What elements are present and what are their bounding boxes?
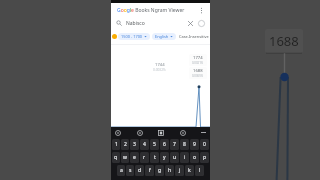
staticText: 1688 [269, 32, 299, 50]
button[interactable]: t [150, 152, 159, 163]
staticText: 6 [163, 141, 166, 148]
button[interactable]: GIF [135, 128, 144, 137]
staticText: 1774 [193, 55, 203, 61]
button[interactable]: 5 [150, 139, 159, 150]
staticText: Case-Insensitive [179, 34, 209, 39]
button[interactable]: More [199, 128, 208, 137]
button[interactable]: g [155, 165, 164, 176]
button[interactable]: r [140, 152, 149, 163]
button[interactable]: 0 [200, 139, 209, 150]
staticText: h [168, 167, 172, 174]
button[interactable]: 3 [130, 139, 139, 150]
button[interactable]: Emoji [113, 128, 122, 137]
button[interactable]: l [195, 165, 204, 176]
button[interactable]: 9 [190, 139, 199, 150]
staticText: i [184, 154, 186, 161]
button[interactable]: y [160, 152, 169, 163]
staticText: 1500 - 1700 [121, 34, 143, 39]
button[interactable]: f [145, 165, 154, 176]
button[interactable]: 4 [140, 139, 149, 150]
staticText: l [199, 167, 201, 174]
button[interactable]: 1 [112, 139, 120, 150]
staticText: 0 [203, 141, 206, 148]
button[interactable]: Help [197, 19, 206, 28]
staticText: j [179, 167, 181, 174]
button[interactable]: h [165, 165, 174, 176]
staticText: 2 [124, 141, 127, 148]
button[interactable]: More options [196, 5, 206, 15]
staticText: o [193, 154, 197, 161]
staticText: 1688 [193, 68, 203, 74]
staticText: 1744 [155, 62, 165, 68]
staticText: 0.0032% [153, 68, 166, 72]
button[interactable]: Clear [186, 19, 194, 27]
button[interactable]: w [121, 152, 129, 163]
staticText: d [138, 167, 142, 174]
button[interactable]: 7 [170, 139, 179, 150]
staticText: 9 [193, 141, 196, 148]
button[interactable]: j [175, 165, 184, 176]
button[interactable]: k [185, 165, 194, 176]
staticText: y [163, 154, 166, 161]
staticText: u [173, 154, 177, 161]
button[interactable]: a [117, 165, 125, 176]
staticText: w [123, 154, 127, 161]
staticText: k [188, 167, 191, 174]
button[interactable]: 6 [160, 139, 169, 150]
staticText: 1 [115, 141, 118, 148]
button[interactable]: 1500 - 1700 [118, 33, 150, 40]
button[interactable]: s [126, 165, 134, 176]
button[interactable]: 8 [180, 139, 189, 150]
staticText: 8 [183, 141, 186, 148]
button[interactable]: o [190, 152, 199, 163]
staticText: Google Books Ngram Viewer [117, 7, 185, 14]
button[interactable]: English [152, 33, 176, 40]
staticText: 5 [153, 141, 156, 148]
staticText: 4 [143, 141, 146, 148]
staticText: t [154, 154, 156, 161]
staticText: e [133, 154, 136, 161]
staticText: 3 [133, 141, 136, 148]
button[interactable]: Clipboard [156, 128, 165, 137]
button[interactable]: p [200, 152, 209, 163]
staticText: s [129, 167, 132, 174]
staticText: Nabisco [126, 20, 145, 27]
staticText: a [120, 167, 123, 174]
staticText: r [143, 154, 146, 161]
button[interactable]: Nabisco [116, 17, 206, 29]
button[interactable]: u [170, 152, 179, 163]
staticText: 0.0021% [192, 61, 204, 65]
staticText: f [149, 167, 151, 174]
button[interactable]: Settings [178, 128, 187, 137]
staticText: g [158, 167, 162, 174]
button[interactable]: q [112, 152, 120, 163]
staticText: 7 [173, 141, 176, 148]
button[interactable]: 2 [121, 139, 129, 150]
staticText: English [155, 34, 169, 39]
button[interactable]: i [180, 152, 189, 163]
staticText: q [114, 154, 118, 161]
staticText: 0.0065% [192, 74, 204, 78]
button[interactable]: d [135, 165, 144, 176]
staticText: p [203, 154, 207, 161]
button[interactable]: e [130, 152, 139, 163]
